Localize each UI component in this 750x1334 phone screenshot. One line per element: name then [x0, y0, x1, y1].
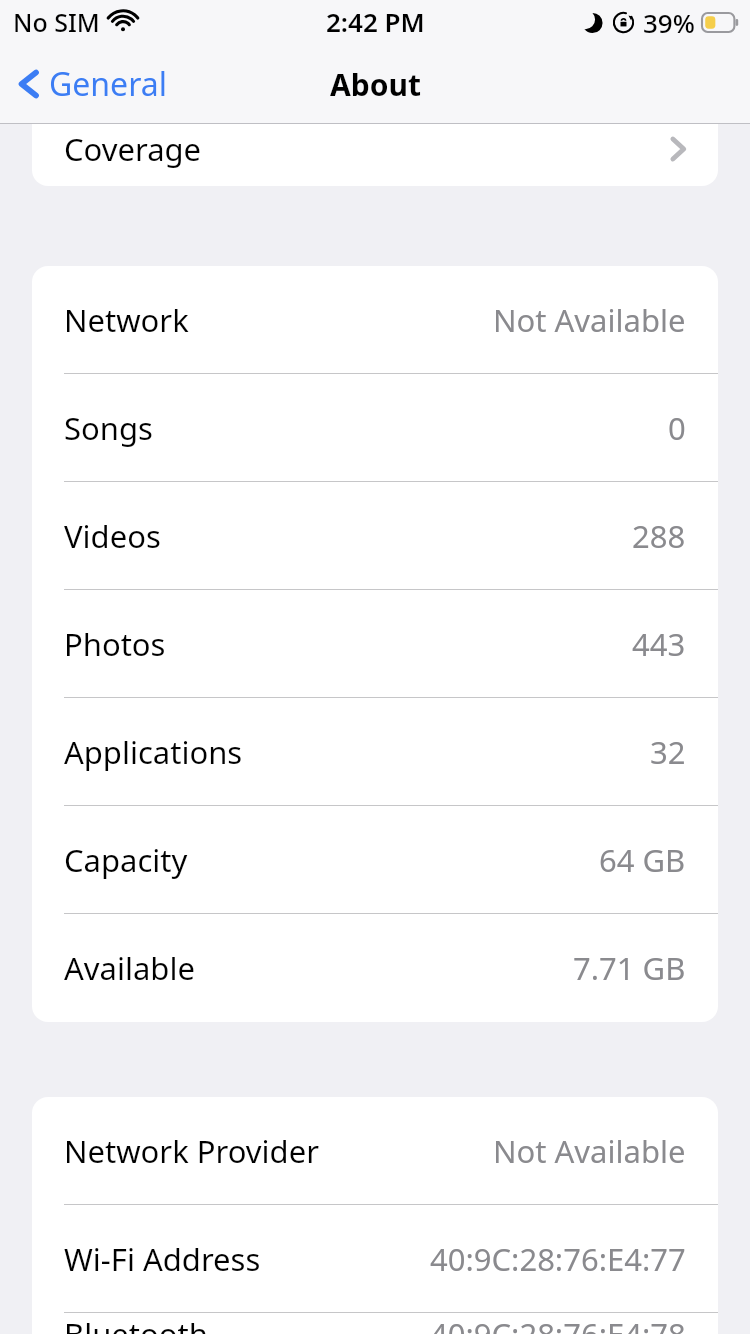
staticText: 2:42 PM: [326, 4, 425, 39]
staticText: Network: [64, 299, 189, 341]
button[interactable]: Applications: [32, 698, 718, 806]
staticText: 40:9C:28:76:E4:77: [430, 1238, 686, 1280]
button[interactable]: Capacity: [32, 806, 718, 914]
staticText: Available: [64, 947, 195, 989]
button[interactable]: Network: [32, 266, 718, 374]
button[interactable]: Available: [32, 914, 718, 1022]
staticText: Photos: [64, 623, 166, 665]
staticText: 7.71 GB: [573, 947, 686, 989]
button[interactable]: Wi-Fi Address: [32, 1205, 718, 1313]
staticText: 288: [632, 515, 686, 557]
staticText: 32: [650, 731, 686, 773]
button[interactable]: General: [14, 56, 171, 112]
staticText: About: [330, 64, 421, 105]
staticText: No SIM: [13, 5, 100, 39]
button[interactable]: Photos: [32, 590, 718, 698]
staticText: Not Available: [493, 299, 686, 341]
staticText: Coverage: [64, 128, 202, 170]
staticText: Network Provider: [64, 1130, 319, 1172]
staticText: 443: [632, 623, 686, 665]
button[interactable]: Videos: [32, 482, 718, 590]
staticText: Wi-Fi Address: [64, 1238, 261, 1280]
staticText: Videos: [64, 515, 161, 557]
other: Open Coverage: [670, 135, 686, 163]
staticText: 40:9C:28:76:E4:78: [430, 1313, 686, 1334]
staticText: Capacity: [64, 839, 188, 881]
button[interactable]: Bluetooth: [32, 1313, 718, 1334]
staticText: Songs: [64, 407, 153, 449]
staticText: Not Available: [493, 1130, 686, 1172]
staticText: 0: [668, 407, 686, 449]
staticText: 39%: [643, 5, 695, 40]
button[interactable]: Songs: [32, 374, 718, 482]
button[interactable]: Network Provider: [32, 1097, 718, 1205]
staticText: General: [49, 62, 167, 106]
button[interactable]: Coverage: [32, 124, 718, 143]
staticText: Applications: [64, 731, 243, 773]
staticText: Bluetooth: [64, 1313, 208, 1334]
staticText: 64 GB: [599, 839, 686, 881]
